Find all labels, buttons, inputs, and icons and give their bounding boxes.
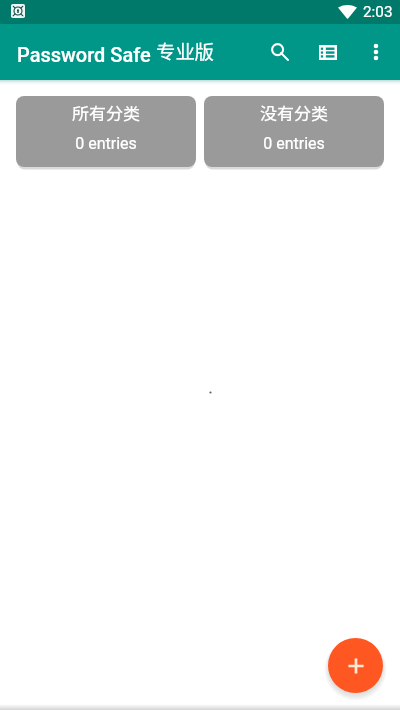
- button[interactable]: 所有分类: [16, 96, 196, 167]
- staticText: 0 entries: [263, 134, 325, 153]
- button[interactable]: 没有分类: [204, 96, 384, 167]
- button[interactable]: More options: [352, 28, 400, 76]
- staticText: 所有分类: [72, 100, 140, 125]
- button[interactable]: Switch view: [304, 28, 352, 76]
- staticText: Password Safe: [17, 43, 156, 66]
- staticText: 2:03: [363, 3, 393, 21]
- button[interactable]: Add entry: [328, 638, 383, 693]
- staticText: 没有分类: [260, 100, 328, 125]
- staticText: 0 entries: [75, 134, 137, 153]
- staticText: 专业版: [156, 36, 215, 64]
- button[interactable]: Search: [256, 28, 304, 76]
